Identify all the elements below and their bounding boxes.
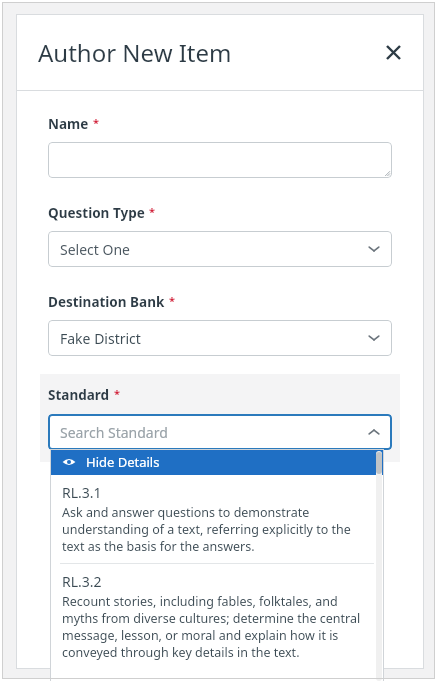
button[interactable]: Select One <box>48 231 392 267</box>
button[interactable] <box>380 598 414 628</box>
staticText: Author New Item <box>38 36 232 69</box>
staticText: RL.3.1 <box>62 483 102 502</box>
staticText: Ask and answer questions to demonstrate … <box>62 504 368 555</box>
button[interactable]: RL.3.2 <box>50 564 384 669</box>
staticText: * <box>93 115 99 130</box>
staticText: Name <box>48 115 89 133</box>
button[interactable]: Search Standard <box>48 414 392 450</box>
staticText: Search Standard <box>60 423 168 442</box>
button[interactable] <box>48 142 392 178</box>
staticText: Hide Details <box>86 453 160 471</box>
button[interactable]: RL.3.1 <box>50 475 384 563</box>
staticText: Question Type <box>48 204 145 222</box>
staticText: * <box>114 386 120 401</box>
staticText: Fake District <box>60 329 141 348</box>
staticText: Recount stories, including fables, folkt… <box>62 593 368 661</box>
button[interactable]: Fake District <box>48 320 392 356</box>
staticText: Destination Bank <box>48 293 165 311</box>
staticText: Select One <box>60 240 130 259</box>
staticText: Standard <box>48 386 110 404</box>
staticText: RL.3.2 <box>62 572 102 591</box>
staticText: * <box>169 293 175 308</box>
button[interactable]: Close <box>376 35 410 69</box>
staticText: * <box>149 204 155 219</box>
button[interactable]: Hide Details <box>50 449 384 475</box>
